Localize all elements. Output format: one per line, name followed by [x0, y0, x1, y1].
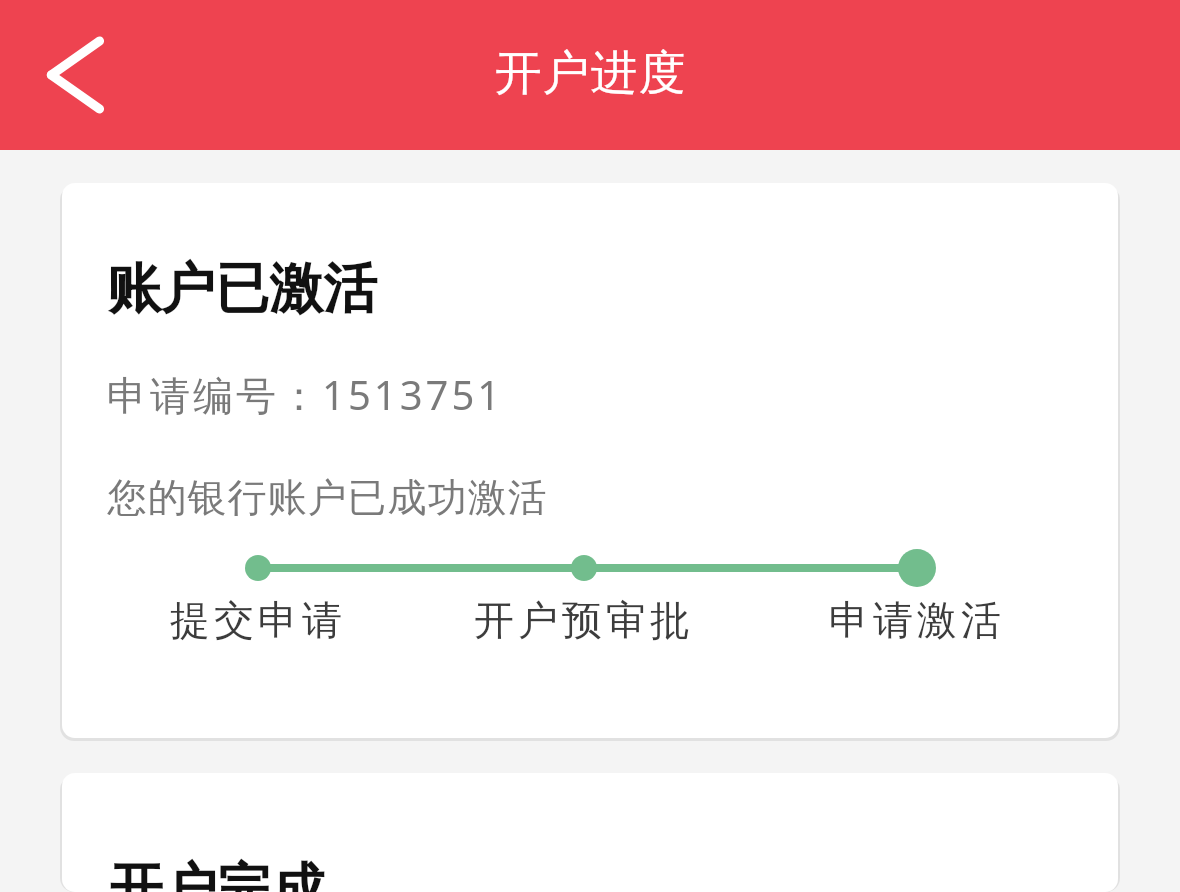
staticText: 开户预审批 [444, 595, 724, 645]
staticText: 您的银行账户已成功激活 [107, 473, 547, 522]
staticText: 申请编号：1513751 [107, 367, 504, 422]
button[interactable]: Back [20, 32, 106, 118]
staticText: 账户已激活 [107, 255, 377, 323]
staticText: 开户完成 [109, 855, 325, 892]
staticText: 开户进度 [494, 44, 686, 103]
staticText: 申请激活 [787, 595, 1047, 645]
staticText: 提交申请 [128, 595, 388, 645]
